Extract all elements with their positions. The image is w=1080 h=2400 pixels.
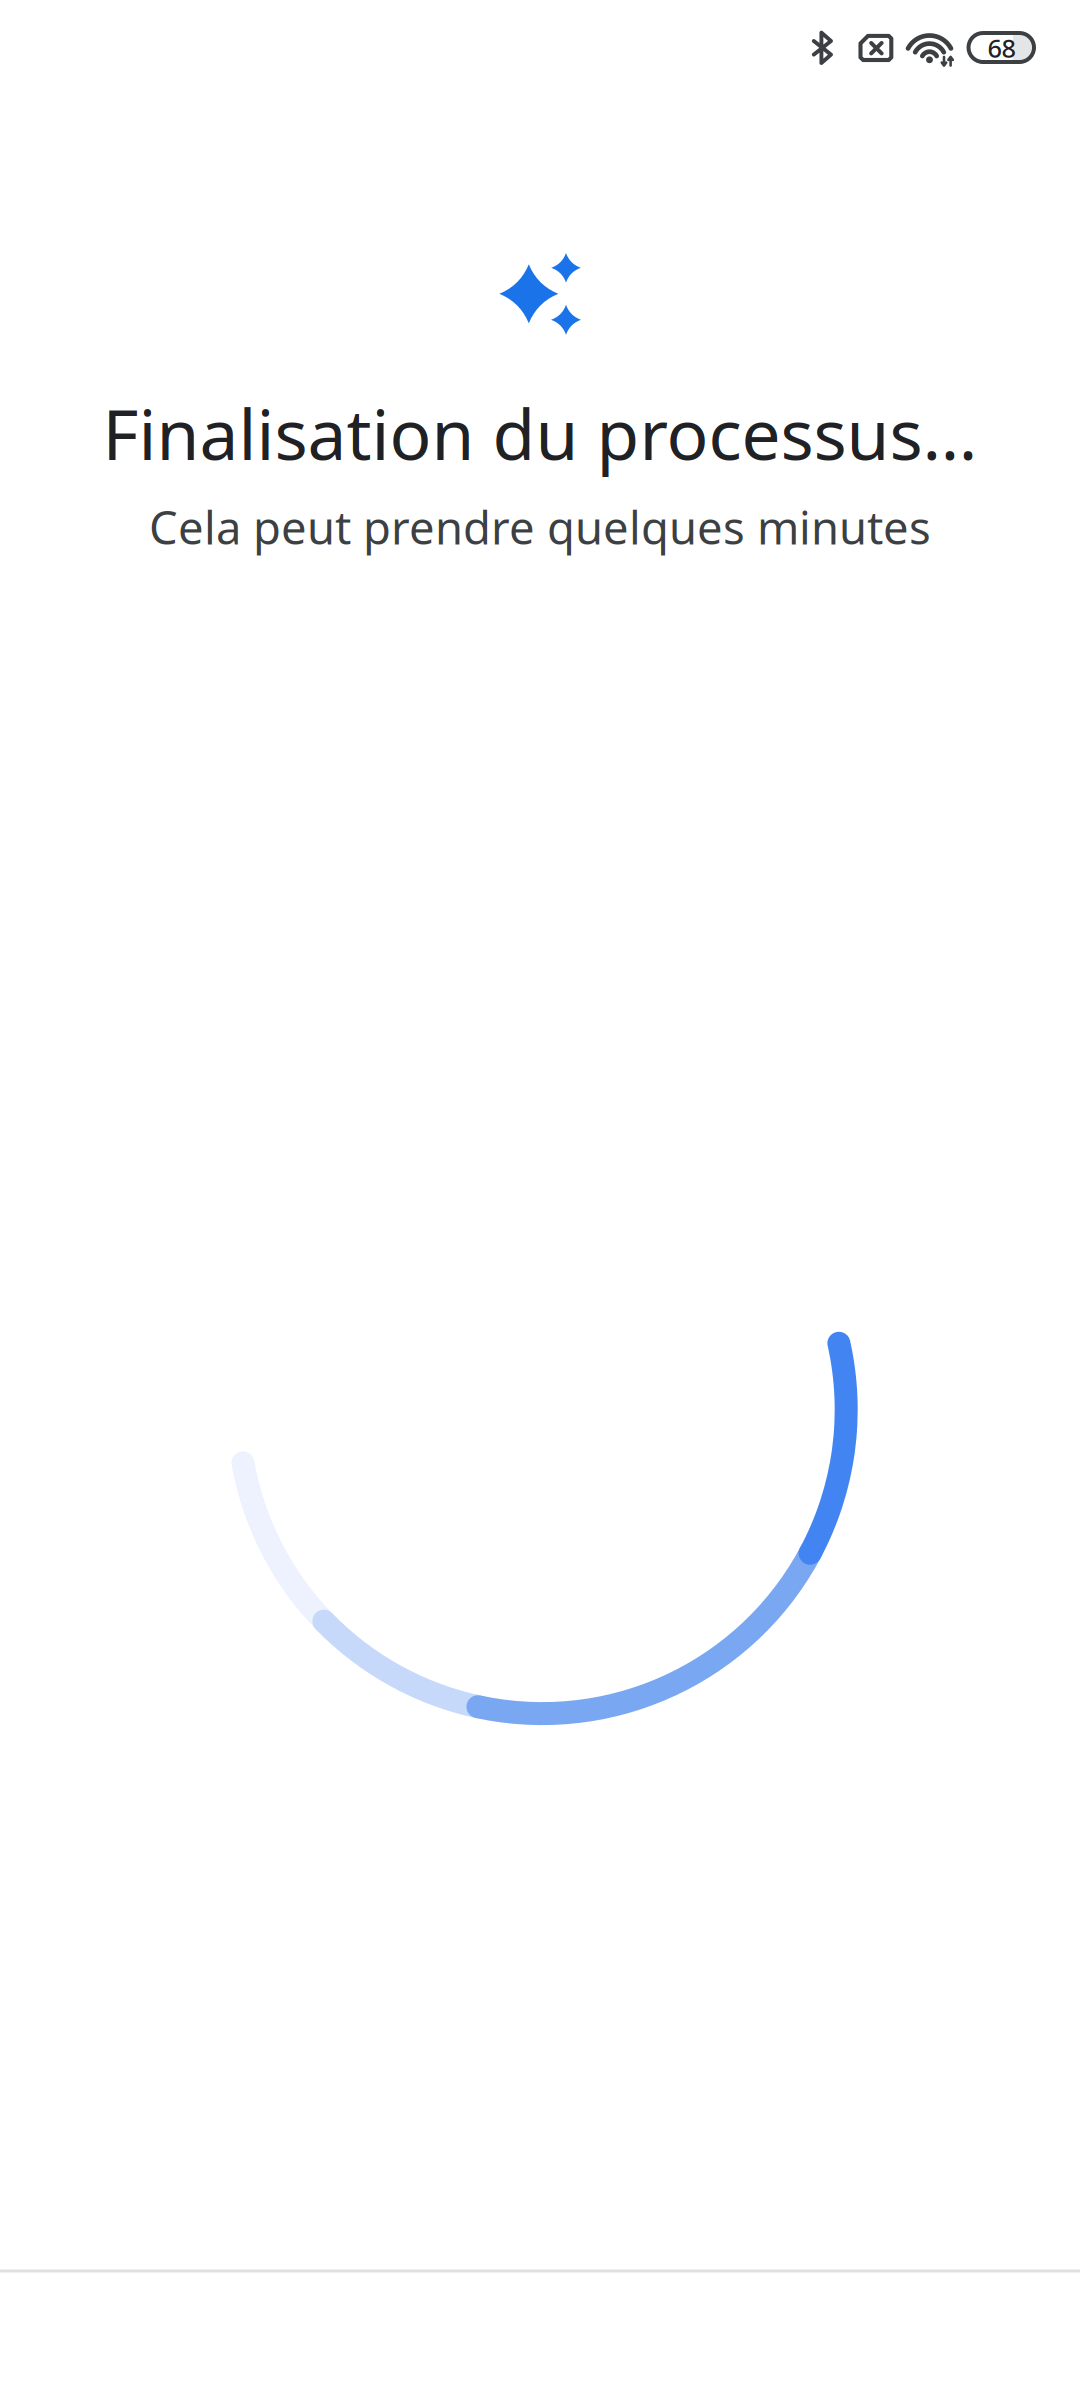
staticText: Cela peut prendre quelques minutes — [149, 497, 931, 557]
staticText: Finalisation du processus… — [102, 387, 977, 479]
staticText: 68 — [987, 31, 1015, 65]
